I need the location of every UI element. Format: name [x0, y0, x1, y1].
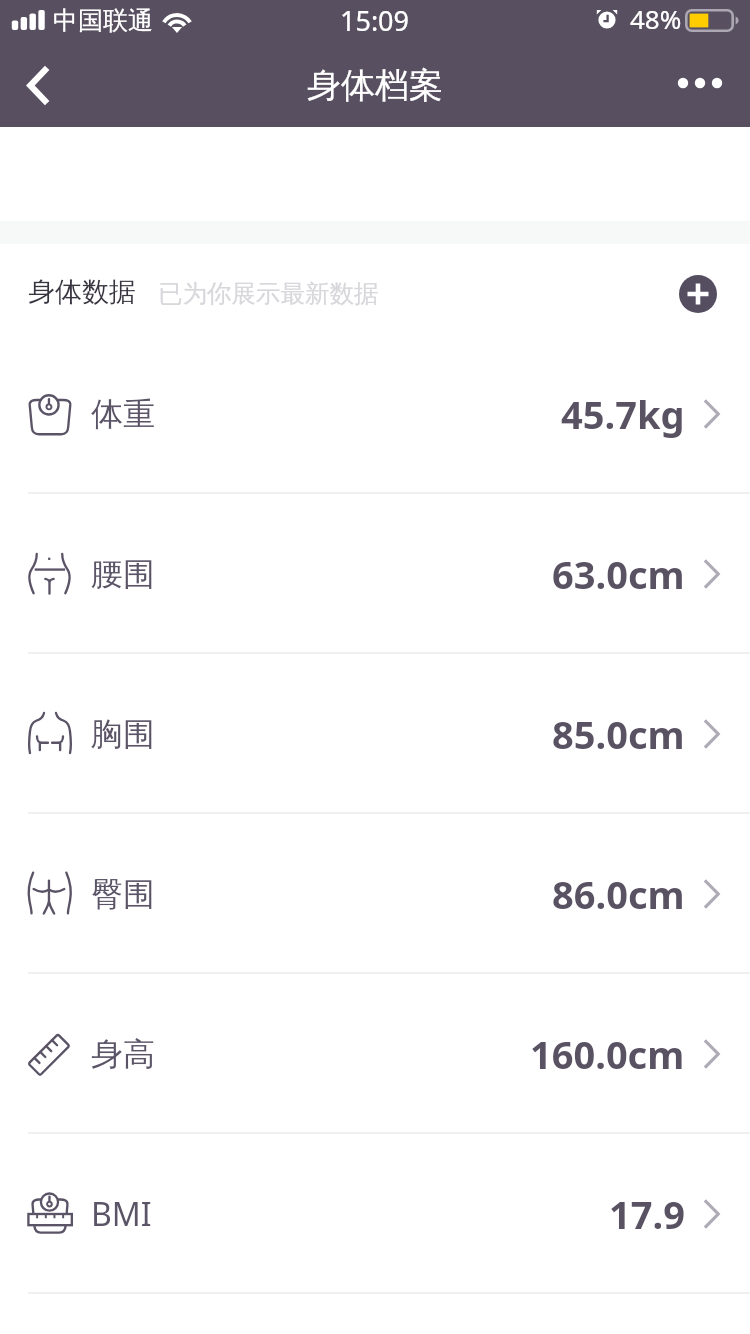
staticText: 身体档案	[307, 64, 443, 107]
staticText: 160.0cm	[530, 1028, 685, 1080]
button[interactable]: 身高	[0, 974, 750, 1134]
staticText: 85.0cm	[552, 708, 685, 760]
staticText: 15:09	[340, 2, 410, 39]
button[interactable]: 臀围	[0, 814, 750, 974]
staticText: 身体数据	[28, 275, 136, 309]
staticText: 臀围	[91, 874, 155, 914]
button[interactable]: 腰围	[0, 494, 750, 654]
staticText: 63.0cm	[552, 548, 685, 600]
staticText: 中国联通	[53, 5, 153, 36]
button[interactable]: More options	[654, 45, 750, 127]
staticText: 已为你展示最新数据	[158, 278, 379, 309]
button[interactable]: 胸围	[0, 654, 750, 814]
staticText: BMI	[91, 1192, 152, 1236]
button[interactable]: Back	[0, 45, 76, 127]
button[interactable]: BMI	[0, 1134, 750, 1294]
button[interactable]: Add data	[679, 275, 717, 313]
button[interactable]: 体重	[0, 334, 750, 494]
staticText: 86.0cm	[552, 868, 685, 920]
staticText: 体重	[91, 394, 155, 434]
staticText: 身高	[91, 1034, 155, 1074]
staticText: 48%	[630, 1, 682, 36]
staticText: 腰围	[91, 554, 155, 594]
staticText: 17.9	[609, 1188, 685, 1240]
staticText: 45.7kg	[561, 388, 685, 440]
staticText: 胸围	[91, 714, 155, 754]
